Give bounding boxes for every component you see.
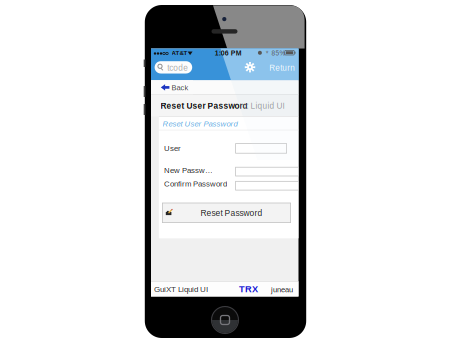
- staticText: GuiXT Liquid UI: [154, 285, 208, 294]
- staticText: User: [164, 144, 181, 153]
- staticText: *: [266, 49, 269, 57]
- staticText: 85%: [272, 50, 286, 57]
- button[interactable]: Back: [151, 80, 193, 94]
- staticText: Return: [269, 63, 295, 73]
- button[interactable]: Settings: [243, 61, 256, 74]
- staticText: Reset User Password: [161, 101, 248, 110]
- staticText: Back: [172, 84, 189, 92]
- staticText: New Passw…: [164, 166, 213, 175]
- staticText: Reset Password: [201, 208, 263, 218]
- staticText: AT&T: [171, 49, 187, 56]
- button[interactable]: Return: [268, 62, 292, 73]
- staticText: 1:06 PM: [215, 49, 242, 57]
- staticText: tcode: [167, 63, 188, 72]
- staticText: juneau: [271, 285, 293, 294]
- staticText: TRX: [239, 284, 258, 294]
- button[interactable]: Reset Password: [162, 203, 291, 223]
- staticText: : Liquid UI: [246, 101, 284, 110]
- staticText: Confirm Password: [164, 179, 227, 188]
- staticText: Reset User Password: [163, 119, 238, 128]
- button[interactable]: tcode: [155, 61, 192, 73]
